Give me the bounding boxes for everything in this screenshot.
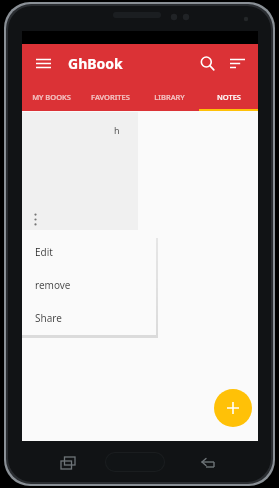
button[interactable]: LIBRARY xyxy=(140,82,199,111)
staticText: GhBook xyxy=(68,54,123,73)
button[interactable]: Search xyxy=(192,48,222,78)
button[interactable]: NOTES xyxy=(199,82,258,111)
staticText: FAVORITES xyxy=(91,92,130,102)
staticText: remove xyxy=(35,278,71,292)
button[interactable]: Back xyxy=(196,452,218,474)
button[interactable]: Add note xyxy=(214,389,252,427)
button[interactable]: FAVORITES xyxy=(81,82,140,111)
button[interactable]: h xyxy=(22,112,138,230)
staticText: MY BOOKS xyxy=(32,92,71,102)
staticText: LIBRARY xyxy=(154,92,185,102)
button[interactable]: Sort xyxy=(222,48,252,78)
button[interactable]: Edit xyxy=(22,235,156,268)
button[interactable]: Open navigation drawer xyxy=(28,48,58,78)
button[interactable]: remove xyxy=(22,268,156,301)
staticText: h xyxy=(114,124,120,136)
button[interactable]: MY BOOKS xyxy=(22,82,81,111)
staticText: Share xyxy=(35,311,62,325)
button[interactable]: Share xyxy=(22,301,156,334)
button[interactable]: More options xyxy=(26,210,44,228)
staticText: Edit xyxy=(35,245,53,259)
button[interactable]: Recent apps xyxy=(57,452,79,474)
staticText: NOTES xyxy=(217,92,241,102)
